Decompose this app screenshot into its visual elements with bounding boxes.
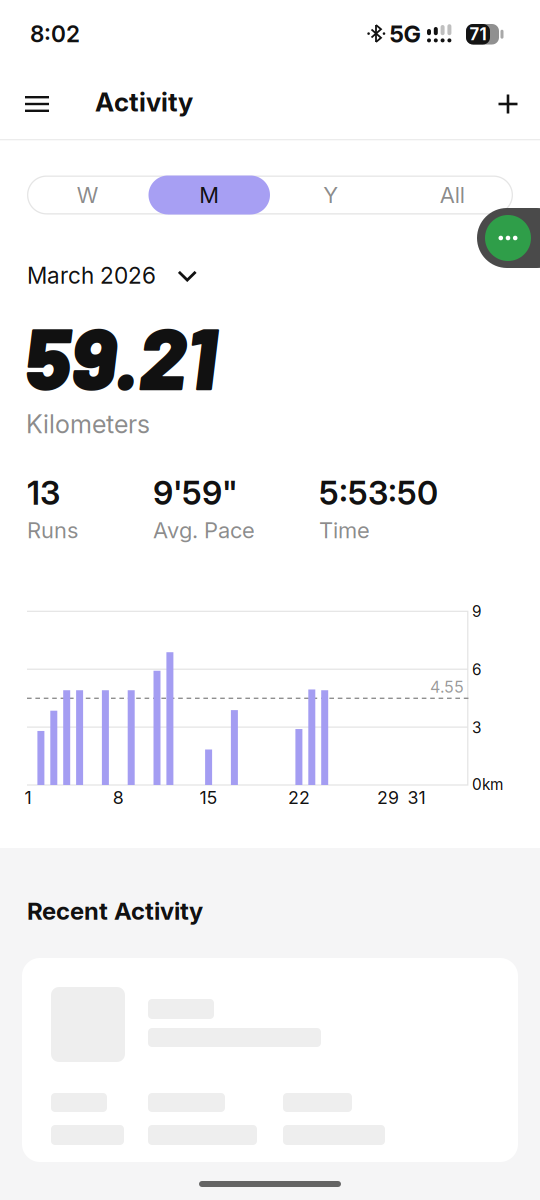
staticText: 15 xyxy=(200,787,218,808)
staticText: 4.55 xyxy=(430,677,464,697)
button[interactable]: More options xyxy=(477,208,540,268)
staticText: 59.21 xyxy=(24,303,216,407)
staticText: 29 xyxy=(377,787,399,808)
staticText: Activity xyxy=(95,86,193,118)
staticText: 1 xyxy=(24,787,31,808)
staticText: 13 xyxy=(27,473,60,512)
staticText: 8:02 xyxy=(30,20,80,48)
staticText: Y xyxy=(323,182,338,208)
staticText: March 2026 xyxy=(27,262,156,289)
staticText: 71 xyxy=(469,24,486,44)
button[interactable]: March 2026 xyxy=(27,260,207,290)
staticText: 0km xyxy=(472,775,503,794)
staticText: 3 xyxy=(472,718,481,737)
staticText: Avg. Pace xyxy=(153,517,255,544)
staticText: Recent Activity xyxy=(27,896,203,925)
staticText: 31 xyxy=(407,787,425,808)
staticText: 22 xyxy=(288,787,310,808)
staticText: All xyxy=(440,182,465,208)
staticText: 9'59" xyxy=(153,473,238,512)
staticText: 9 xyxy=(472,602,482,621)
staticText: Time xyxy=(319,517,370,544)
staticText: 8 xyxy=(113,787,124,808)
button[interactable]: Add xyxy=(490,86,526,122)
staticText: Kilometers xyxy=(26,409,150,439)
staticText: 5:53:50 xyxy=(319,473,438,512)
staticText: W xyxy=(77,182,99,208)
button[interactable]: Menu xyxy=(25,89,61,119)
button[interactable]: M xyxy=(148,175,270,214)
button[interactable]: W xyxy=(27,175,148,214)
button[interactable]: Y xyxy=(270,175,391,214)
staticText: 5G xyxy=(389,20,420,48)
button[interactable]: All xyxy=(391,175,513,214)
staticText: Runs xyxy=(27,517,78,544)
staticText: 6 xyxy=(472,660,482,679)
staticText: M xyxy=(199,182,219,208)
